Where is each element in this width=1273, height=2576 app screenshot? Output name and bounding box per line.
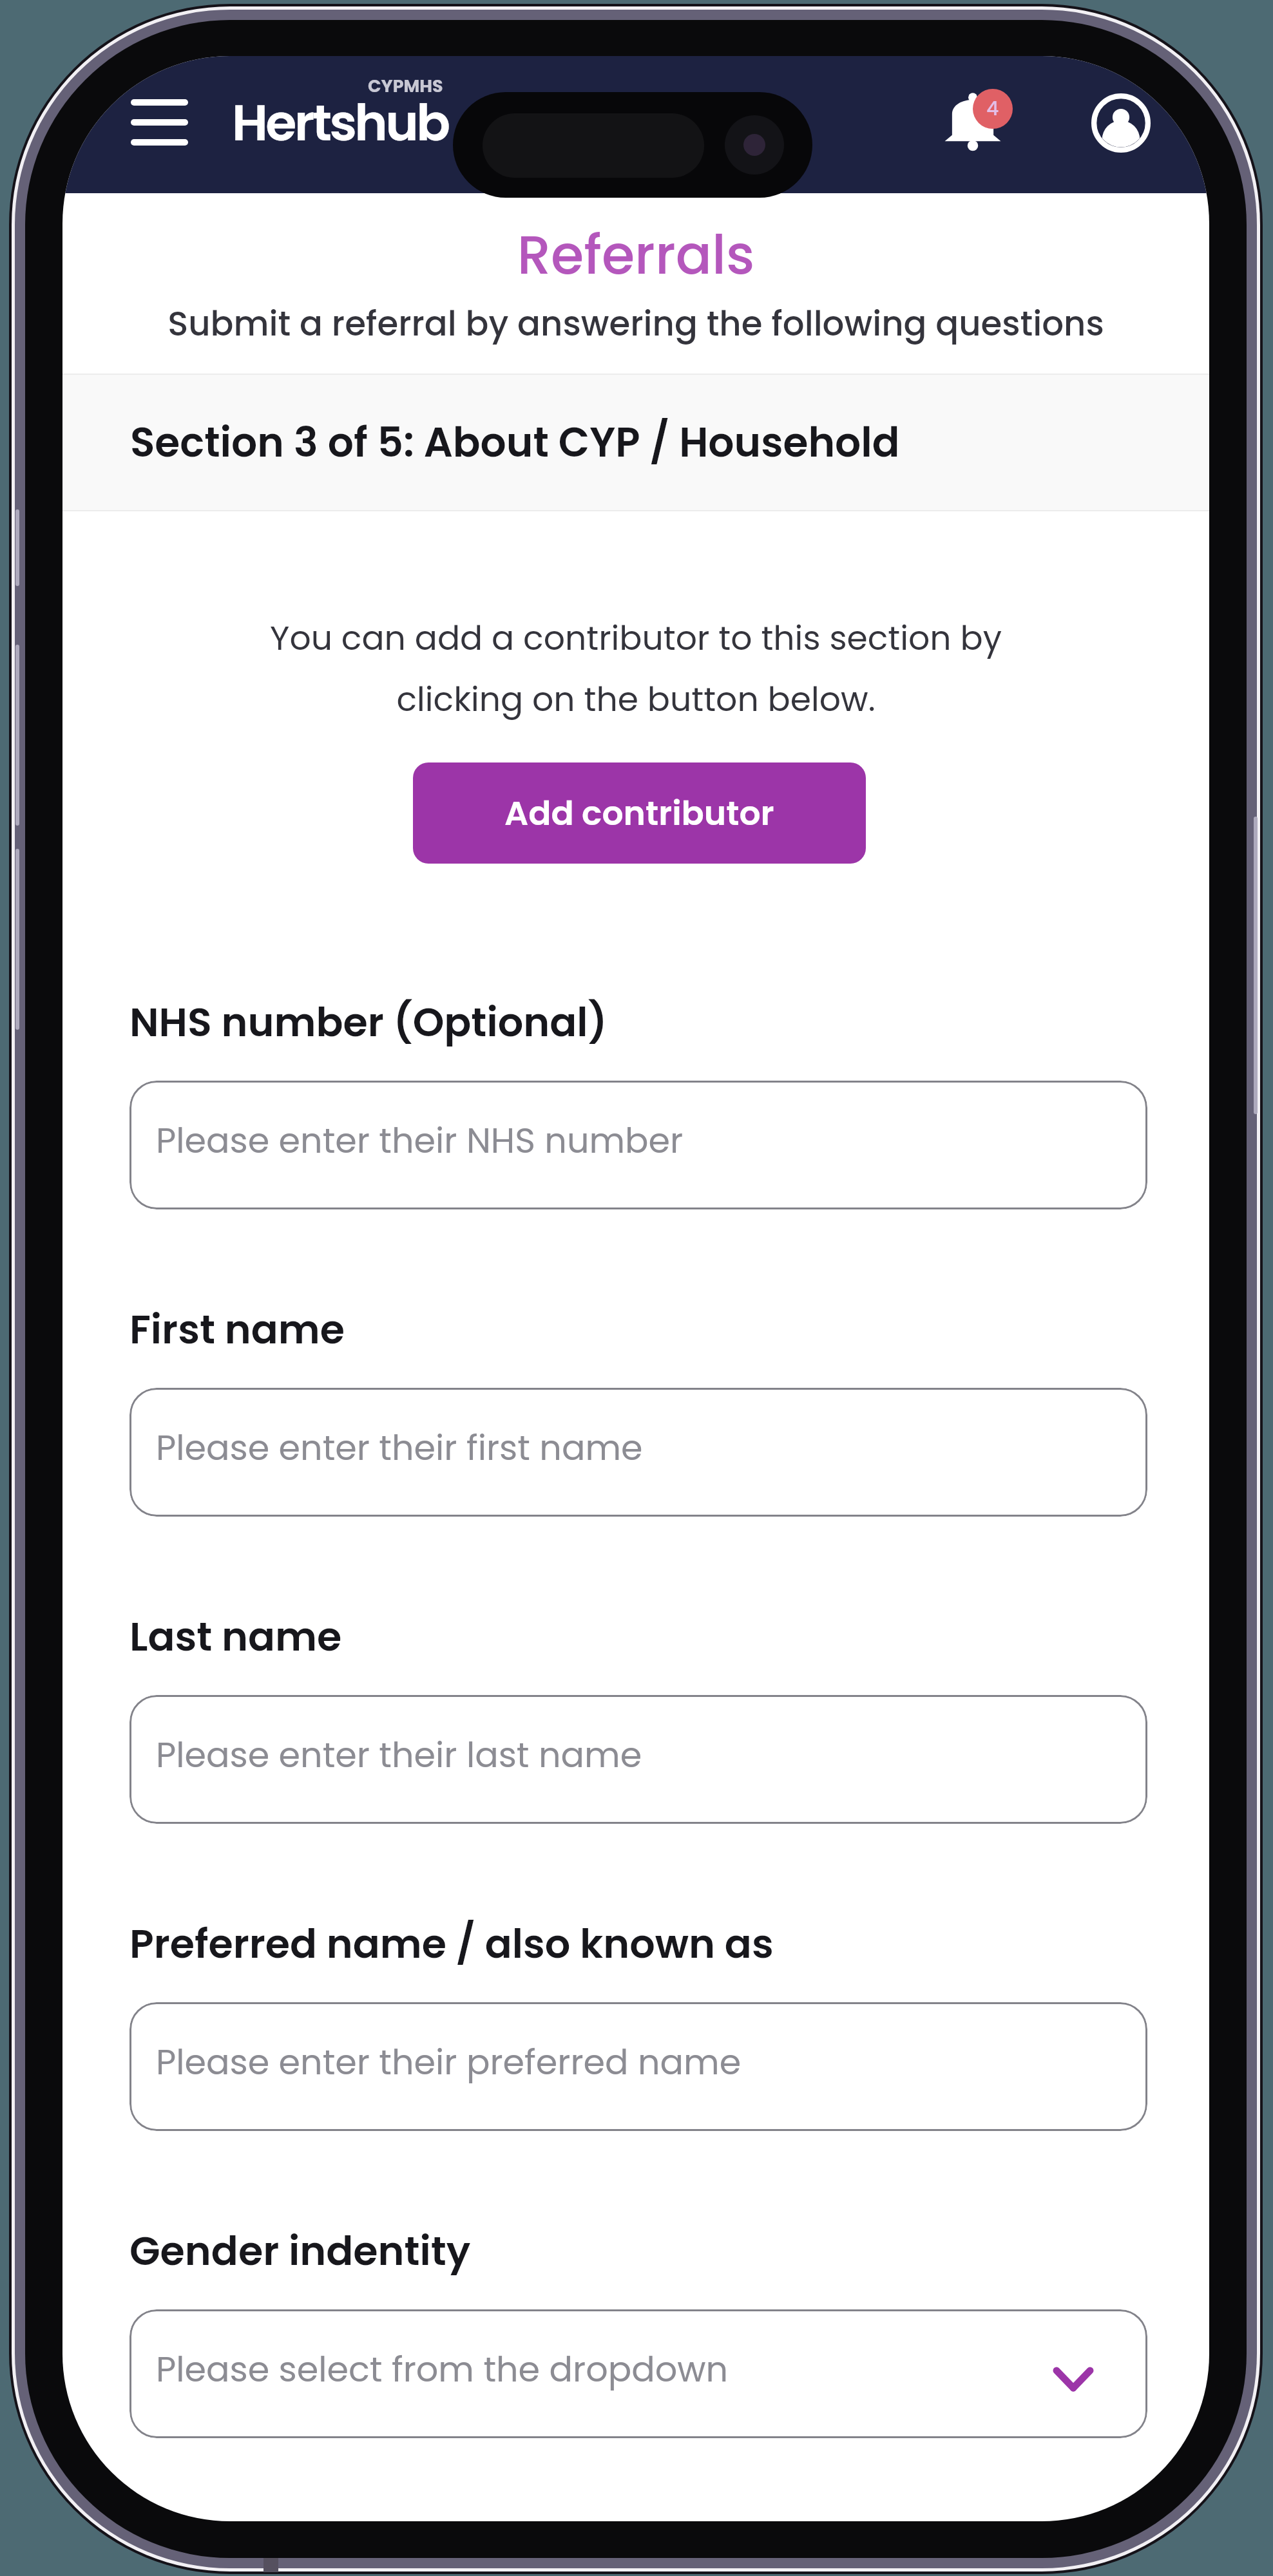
staticText: Section 3 of 5: About CYP / Household	[130, 414, 900, 471]
staticText: Referrals	[62, 218, 1209, 292]
staticText: Please enter their last name	[156, 1730, 642, 1779]
staticText: Hertshub	[232, 88, 448, 158]
staticText: Please enter their first name	[156, 1423, 643, 1472]
staticText: Submit a referral by answering the follo…	[62, 299, 1209, 347]
staticText: Please enter their NHS number	[156, 1116, 684, 1165]
staticText: First name	[129, 1302, 345, 1358]
button[interactable]: Account	[1073, 75, 1169, 171]
staticText: Last name	[129, 1609, 342, 1665]
staticText: Preferred name / also known as	[129, 1916, 774, 1972]
staticText: CYPMHS	[368, 74, 443, 99]
button[interactable]: Please enter their last name	[129, 1695, 1147, 1824]
button[interactable]: Please enter their preferred name	[129, 2002, 1147, 2131]
button[interactable]: Please enter their first name	[129, 1388, 1147, 1517]
staticText: Add contributor	[504, 790, 774, 837]
button[interactable]: Please select from the dropdown	[129, 2309, 1147, 2438]
staticText: Gender indentity	[129, 2223, 471, 2279]
button[interactable]: Notifications	[924, 77, 1021, 173]
button[interactable]: Open navigation menu	[111, 74, 207, 171]
button[interactable]: Add contributor	[413, 762, 866, 864]
staticText: 4	[986, 95, 999, 122]
button[interactable]: Please enter their NHS number	[129, 1081, 1147, 1209]
staticText: Please enter their preferred name	[156, 2038, 742, 2087]
staticText: NHS number (Optional)	[129, 994, 608, 1050]
staticText: Please select from the dropdown	[156, 2345, 729, 2394]
staticText: You can add a contributor to this sectio…	[62, 614, 1209, 723]
